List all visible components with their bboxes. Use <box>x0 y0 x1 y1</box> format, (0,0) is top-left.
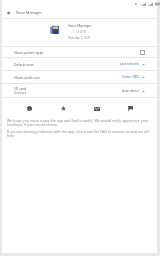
button[interactable]: Back <box>4 8 13 17</box>
button[interactable]: SD card <box>2 84 157 97</box>
button[interactable]: Show system apps <box>2 47 157 57</box>
button[interactable]: Default view <box>2 58 157 70</box>
button[interactable]: Auto detect <box>122 89 145 93</box>
staticText: Detected <box>14 91 27 95</box>
staticText: SD card <box>14 86 27 91</box>
staticText: We hope you enjoy using the app and find… <box>7 118 154 127</box>
button[interactable]: Report <box>124 102 137 115</box>
button[interactable]: Show system apps toggle <box>140 50 145 55</box>
staticText: Store Manager <box>16 10 42 15</box>
staticText: 1.13.4 (7) <box>73 30 87 34</box>
staticText: Last selected <box>120 62 139 66</box>
staticText: If you are having problems with the app,… <box>7 129 154 138</box>
button[interactable]: Rate this app <box>57 102 70 115</box>
staticText: Default view <box>14 62 34 67</box>
staticText: Store Manager <box>68 23 92 28</box>
staticText: Date Apr 6 2021 <box>68 36 91 40</box>
button[interactable]: Cache / MB <box>122 75 145 79</box>
button[interactable]: Last selected <box>120 62 145 66</box>
button[interactable]: Email us <box>90 102 103 115</box>
button[interactable]: Show cache size <box>2 71 157 83</box>
staticText: Cache / MB <box>122 75 139 79</box>
button[interactable]: Help <box>23 102 36 115</box>
staticText: Auto detect <box>122 89 139 93</box>
staticText: Show cache size <box>14 75 40 80</box>
staticText: Show system apps <box>14 50 44 55</box>
